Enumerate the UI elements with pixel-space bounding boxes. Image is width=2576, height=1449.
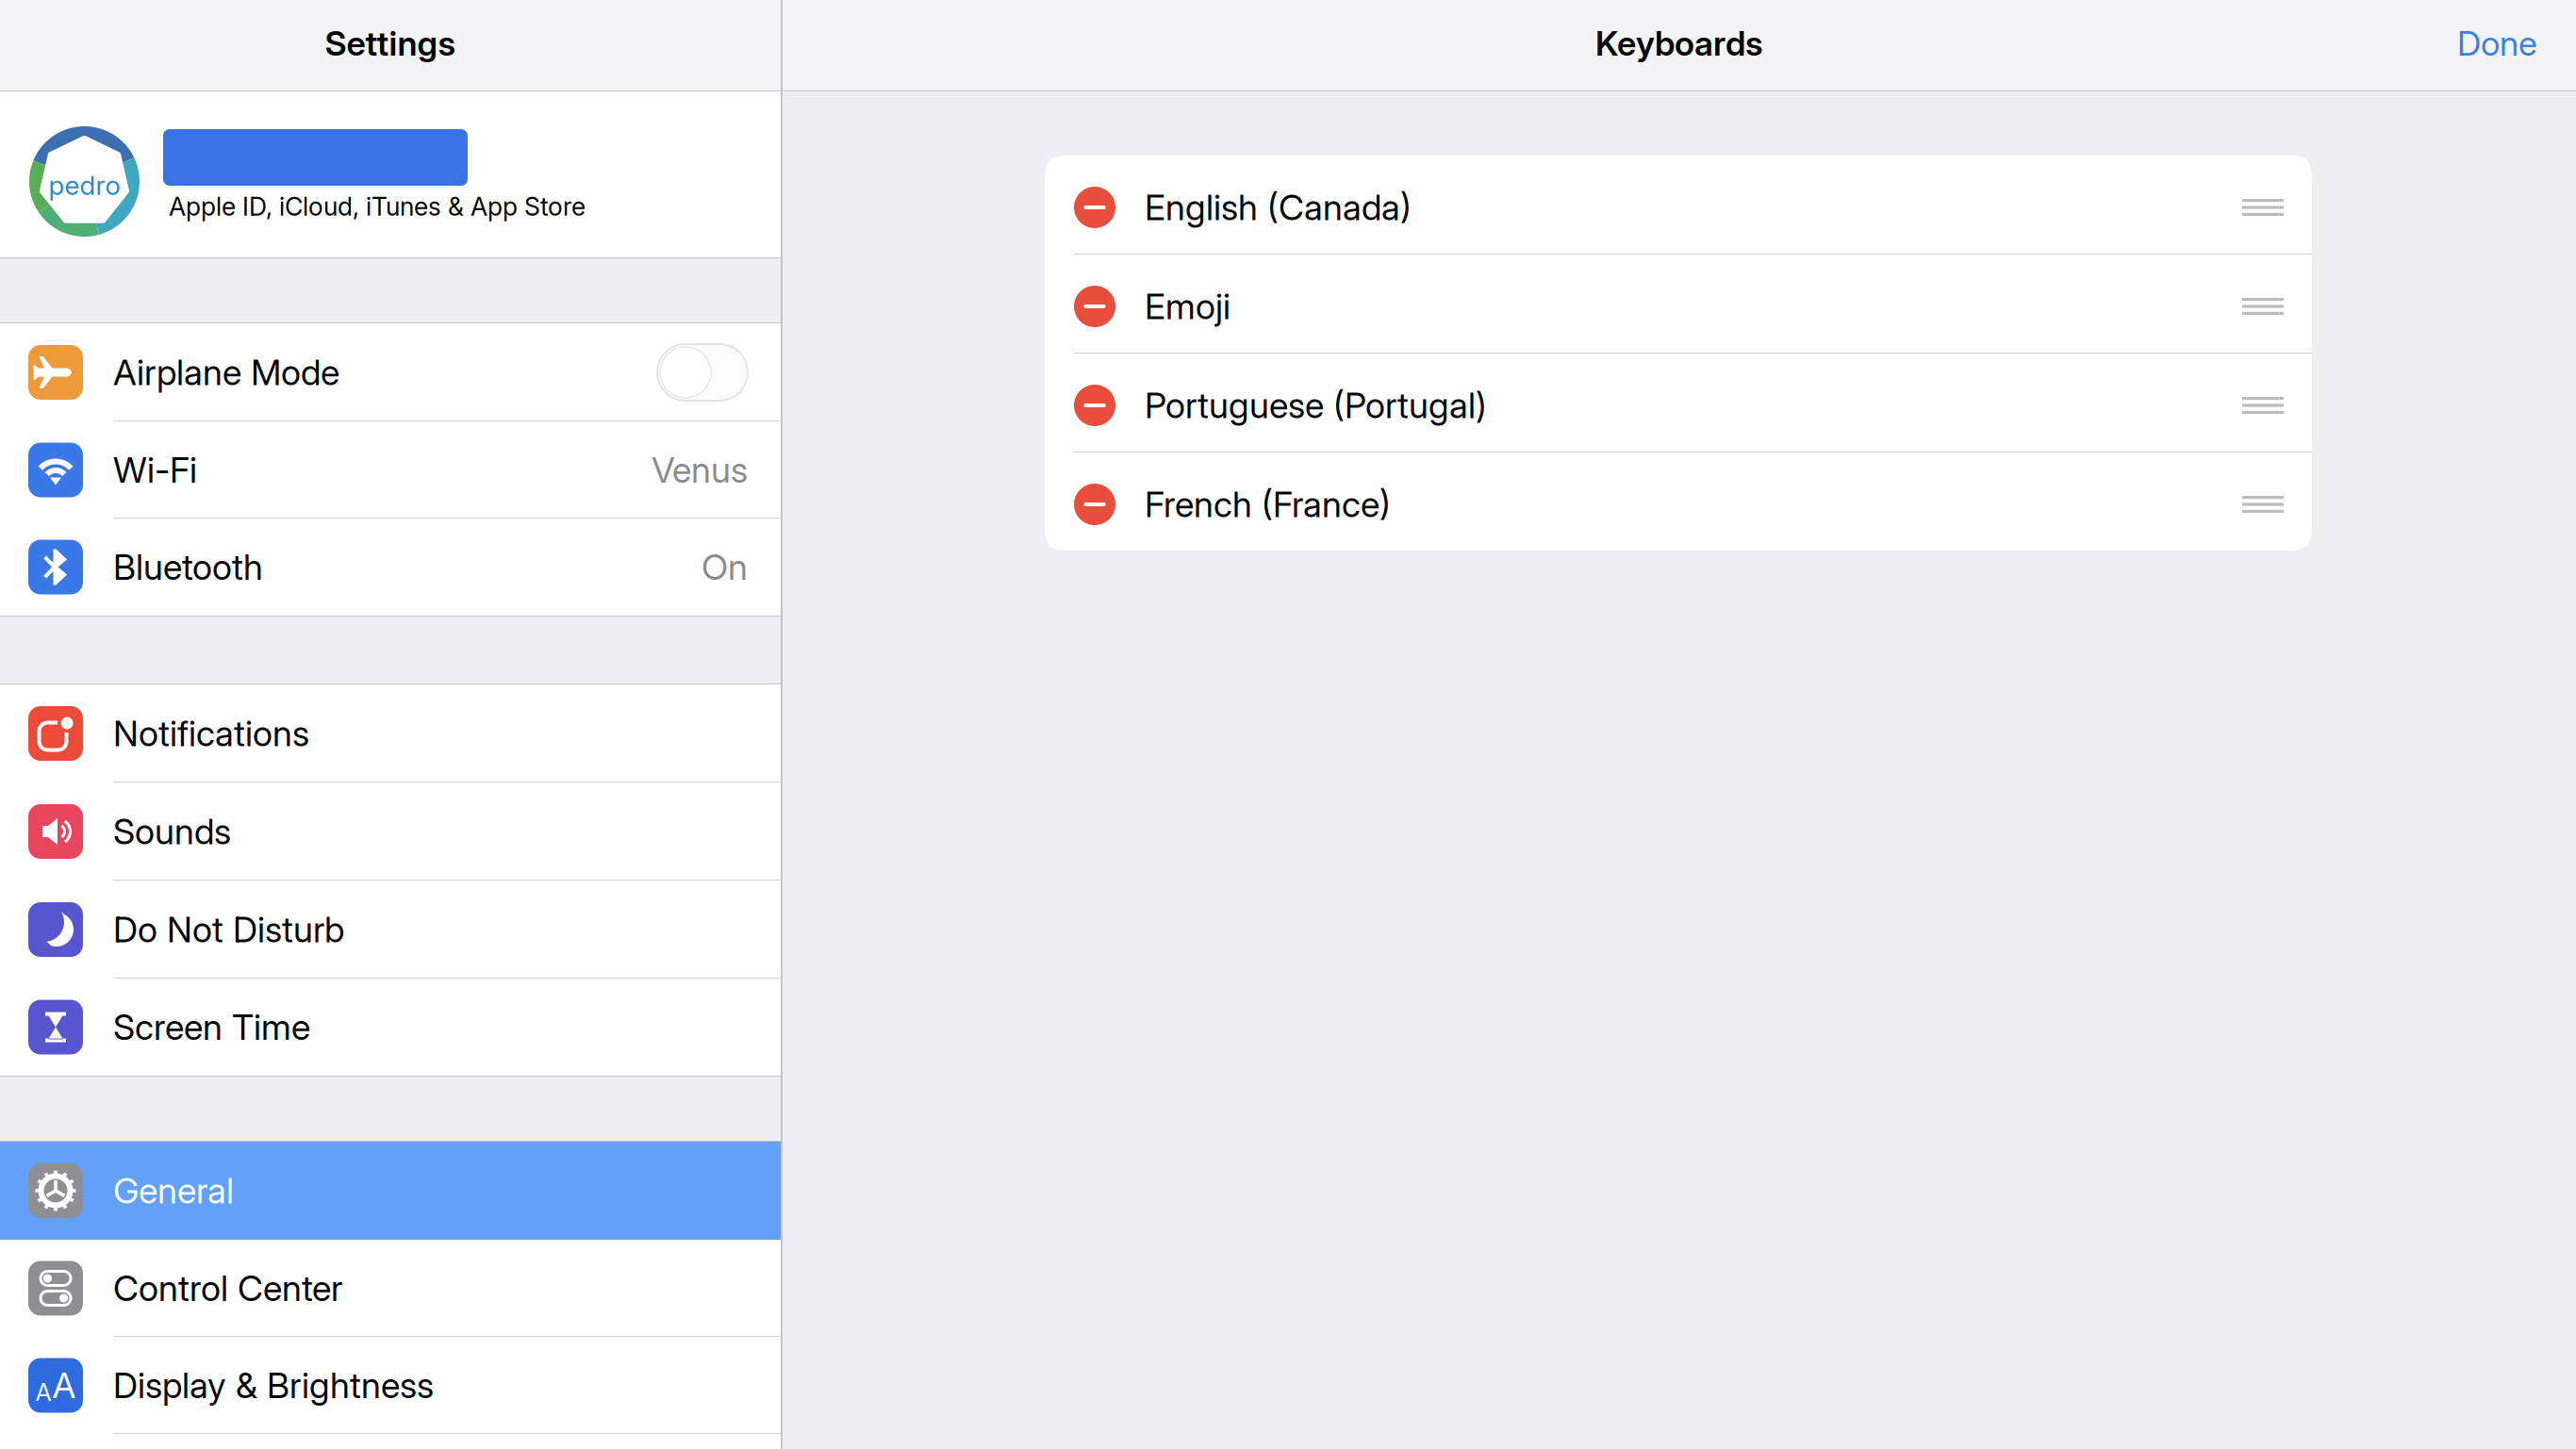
button[interactable]: Reorder English (Canada) <box>2242 199 2284 216</box>
staticText: Do Not Disturb <box>113 908 344 951</box>
button[interactable]: Bluetooth <box>0 519 781 616</box>
staticText: French (France) <box>1145 483 1391 526</box>
staticText: Notifications <box>113 712 309 755</box>
staticText: Emoji <box>1145 285 1230 328</box>
button[interactable]: pedro <box>0 91 781 257</box>
staticText: Venus <box>652 449 748 491</box>
button[interactable]: Reorder French (France) <box>2242 496 2284 513</box>
staticText: Screen Time <box>113 1006 310 1048</box>
button[interactable]: Airplane Mode <box>0 323 781 421</box>
button[interactable]: Sounds <box>0 782 781 881</box>
button[interactable]: Control Center <box>0 1240 781 1337</box>
button[interactable]: Notifications <box>0 684 781 782</box>
staticText: pedro <box>49 169 120 201</box>
staticText: General <box>113 1169 234 1212</box>
button[interactable]: General <box>0 1142 781 1240</box>
button[interactable]: Done <box>2457 25 2576 66</box>
staticText: Bluetooth <box>113 546 263 588</box>
staticText: Display & Brightness <box>113 1364 434 1407</box>
button[interactable]: Screen Time <box>0 979 781 1076</box>
button[interactable]: A <box>0 1337 781 1434</box>
button[interactable]: Delete French (France) <box>1074 484 1115 525</box>
button[interactable]: Reorder Emoji <box>2242 298 2284 315</box>
staticText: Airplane Mode <box>113 351 339 394</box>
staticText: Apple ID, iCloud, iTunes & App Store <box>169 191 586 222</box>
button[interactable]: Delete English (Canada) <box>1074 187 1115 228</box>
staticText: Keyboards <box>1595 23 1763 64</box>
button[interactable]: Wi-Fi <box>0 421 781 519</box>
staticText: English (Canada) <box>1145 186 1412 229</box>
staticText: Control Center <box>113 1267 342 1310</box>
staticText: Wi-Fi <box>113 449 197 491</box>
staticText: Done <box>2457 23 2537 64</box>
staticText: Portuguese (Portugal) <box>1145 384 1487 427</box>
button[interactable]: Do Not Disturb <box>0 881 781 979</box>
button[interactable]: Reorder Portuguese (Portugal) <box>2242 397 2284 414</box>
staticText: A <box>35 1378 51 1407</box>
staticText: Settings <box>325 23 456 64</box>
staticText: Sounds <box>113 810 231 853</box>
button[interactable]: Delete Emoji <box>1074 286 1115 327</box>
button[interactable]: Delete Portuguese (Portugal) <box>1074 385 1115 426</box>
staticText: A <box>52 1364 76 1407</box>
staticText: On <box>702 546 748 588</box>
